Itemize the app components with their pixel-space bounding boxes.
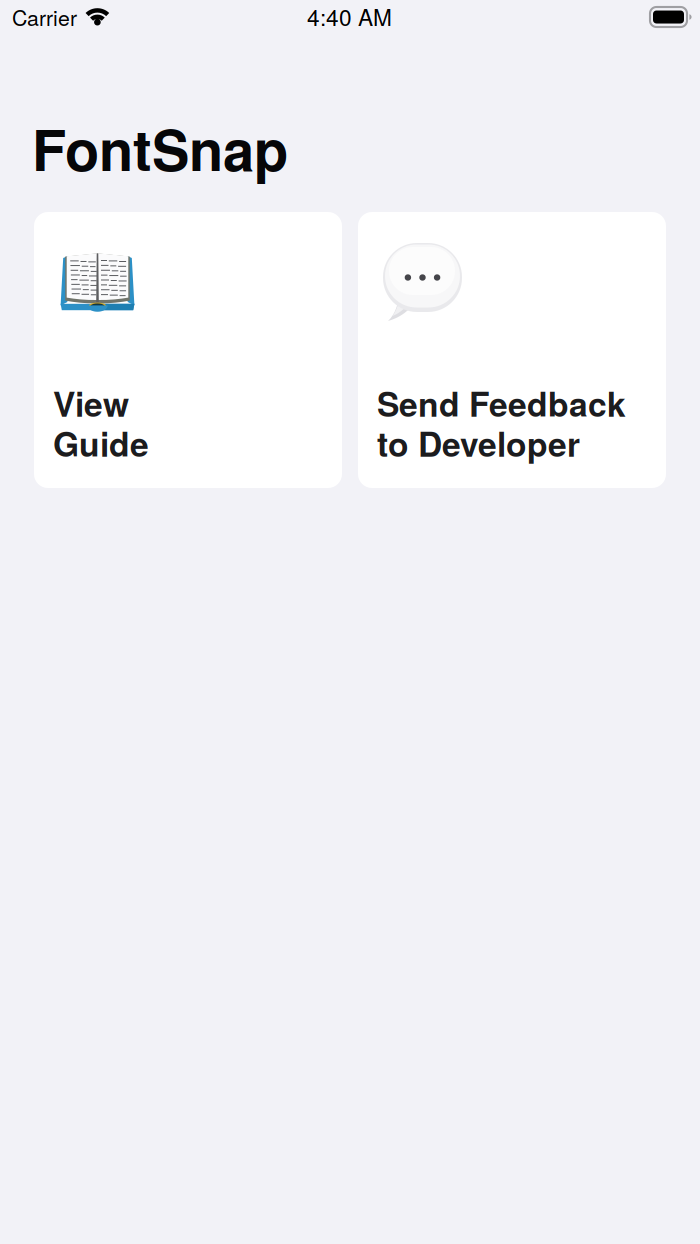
button[interactable]: View — [34, 212, 342, 488]
staticText: Carrier — [12, 1, 77, 32]
staticText: to Developer — [377, 419, 580, 467]
staticText: FontSnap — [32, 108, 288, 188]
staticText: View — [53, 379, 129, 427]
staticText: Send Feedback — [377, 379, 626, 427]
staticText: Guide — [53, 419, 149, 467]
staticText: 4:40 AM — [307, 0, 392, 32]
button[interactable]: Send Feedback — [358, 212, 666, 488]
